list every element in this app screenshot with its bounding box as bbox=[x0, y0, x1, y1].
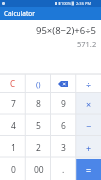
button[interactable]: 00 bbox=[26, 159, 51, 180]
staticText: C bbox=[10, 78, 16, 89]
button[interactable]: 8 bbox=[26, 93, 51, 115]
staticText: 8 bbox=[36, 98, 41, 110]
button[interactable] bbox=[51, 74, 76, 93]
staticText: = bbox=[86, 164, 92, 176]
button[interactable]: × bbox=[76, 93, 101, 115]
staticText: 95×(8−2)+6÷5 bbox=[36, 24, 97, 37]
staticText: 1 bbox=[11, 142, 16, 154]
button[interactable]: C bbox=[0, 74, 26, 93]
button[interactable]: 1 bbox=[0, 137, 26, 159]
button[interactable]: − bbox=[76, 115, 101, 137]
staticText: 9 bbox=[61, 98, 66, 110]
staticText: Calculator bbox=[4, 9, 35, 18]
staticText: . bbox=[62, 164, 65, 176]
staticText: 7 bbox=[11, 98, 16, 110]
button[interactable]: 0 bbox=[0, 159, 26, 180]
staticText: 00 bbox=[34, 164, 44, 176]
button[interactable]: 3 bbox=[51, 137, 76, 159]
staticText: 100% bbox=[61, 1, 72, 6]
button[interactable]: Calculator bbox=[0, 7, 101, 20]
staticText: 6 bbox=[61, 120, 66, 132]
staticText: 2 bbox=[36, 142, 41, 154]
button[interactable]: = bbox=[76, 159, 101, 180]
staticText: 571.2 bbox=[77, 39, 97, 49]
button[interactable]: 5 bbox=[26, 115, 51, 137]
staticText: 5 bbox=[36, 120, 41, 132]
staticText: − bbox=[86, 120, 92, 132]
button[interactable]: 6 bbox=[51, 115, 76, 137]
staticText: + bbox=[86, 142, 92, 154]
staticText: 0 bbox=[11, 164, 16, 176]
staticText: 4 bbox=[11, 120, 16, 132]
button[interactable]: 2 bbox=[26, 137, 51, 159]
staticText: × bbox=[86, 98, 92, 110]
button[interactable]: + bbox=[76, 137, 101, 159]
staticText: 3 bbox=[61, 142, 66, 154]
button[interactable]: 7 bbox=[0, 93, 26, 115]
button[interactable]: () bbox=[26, 74, 51, 93]
button[interactable]: . bbox=[51, 159, 76, 180]
staticText: ÷ bbox=[86, 78, 92, 90]
button[interactable]: ÷ bbox=[76, 74, 101, 93]
button[interactable]: 4 bbox=[0, 115, 26, 137]
staticText: () bbox=[36, 79, 41, 89]
staticText: 2:36 PM bbox=[76, 1, 92, 6]
button[interactable]: 9 bbox=[51, 93, 76, 115]
